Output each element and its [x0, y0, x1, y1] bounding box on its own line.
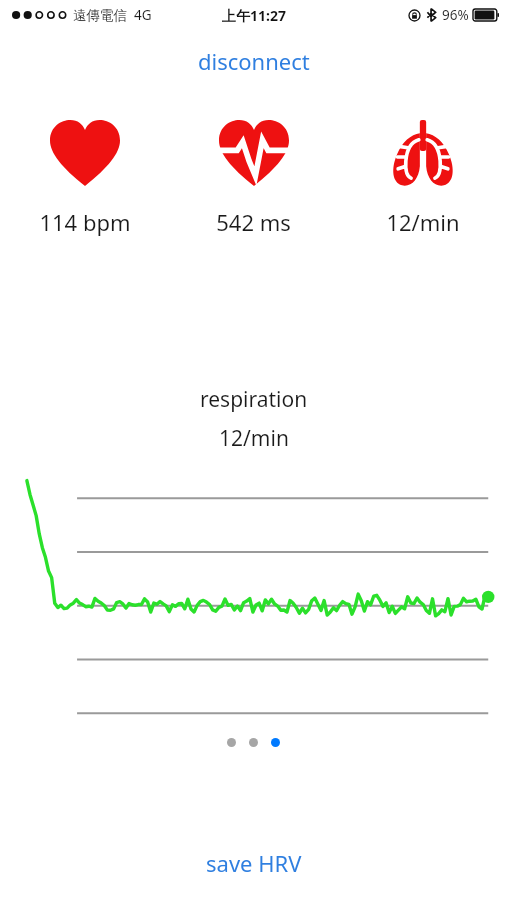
- staticText: 114 bpm: [39, 207, 131, 237]
- staticText: 遠傳電信: [73, 7, 127, 24]
- staticText: respiration: [200, 385, 308, 414]
- button[interactable]: Respiration rate: [338, 117, 507, 237]
- staticText: 4G: [134, 6, 152, 24]
- staticText: 12/min: [219, 424, 289, 453]
- staticText: 542 ms: [216, 207, 291, 237]
- button[interactable]: Page 3 of 3: [217, 732, 290, 753]
- button[interactable]: disconnect: [182, 42, 326, 80]
- staticText: disconnect: [198, 46, 310, 76]
- staticText: 96%: [442, 6, 469, 24]
- button[interactable]: Heart rate: [0, 117, 169, 237]
- staticText: save HRV: [206, 848, 302, 878]
- staticText: 上午11:27: [222, 6, 286, 25]
- button[interactable]: Heart rate variability: [169, 117, 338, 237]
- staticText: 12/min: [386, 207, 460, 237]
- button[interactable]: save HRV: [186, 842, 322, 884]
